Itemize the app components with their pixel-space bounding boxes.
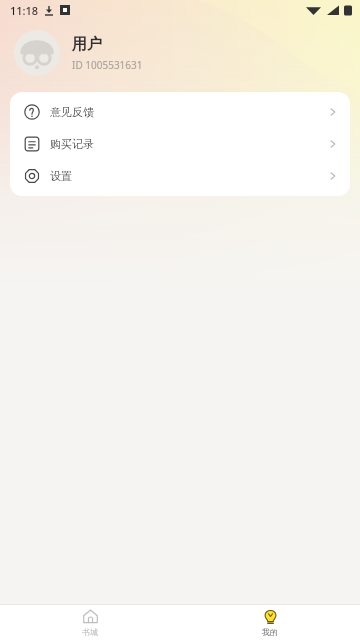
button[interactable]: 设置 [10, 160, 350, 192]
staticText: 设置 [50, 169, 72, 183]
staticText: 我的 [262, 627, 278, 637]
staticText: 11:18 [10, 3, 39, 18]
button[interactable]: 意见反馈 [10, 96, 350, 128]
button[interactable]: 书城 [0, 605, 180, 640]
button[interactable]: 购买记录 [10, 128, 350, 160]
staticText: ID 1005531631 [72, 58, 143, 72]
staticText: 用户 [72, 35, 102, 54]
staticText: 意见反馈 [50, 105, 94, 119]
button[interactable]: 我的 [180, 605, 360, 640]
staticText: 购买记录 [50, 137, 94, 151]
staticText: 书城 [82, 627, 98, 637]
button[interactable]: 用户 [14, 28, 360, 78]
